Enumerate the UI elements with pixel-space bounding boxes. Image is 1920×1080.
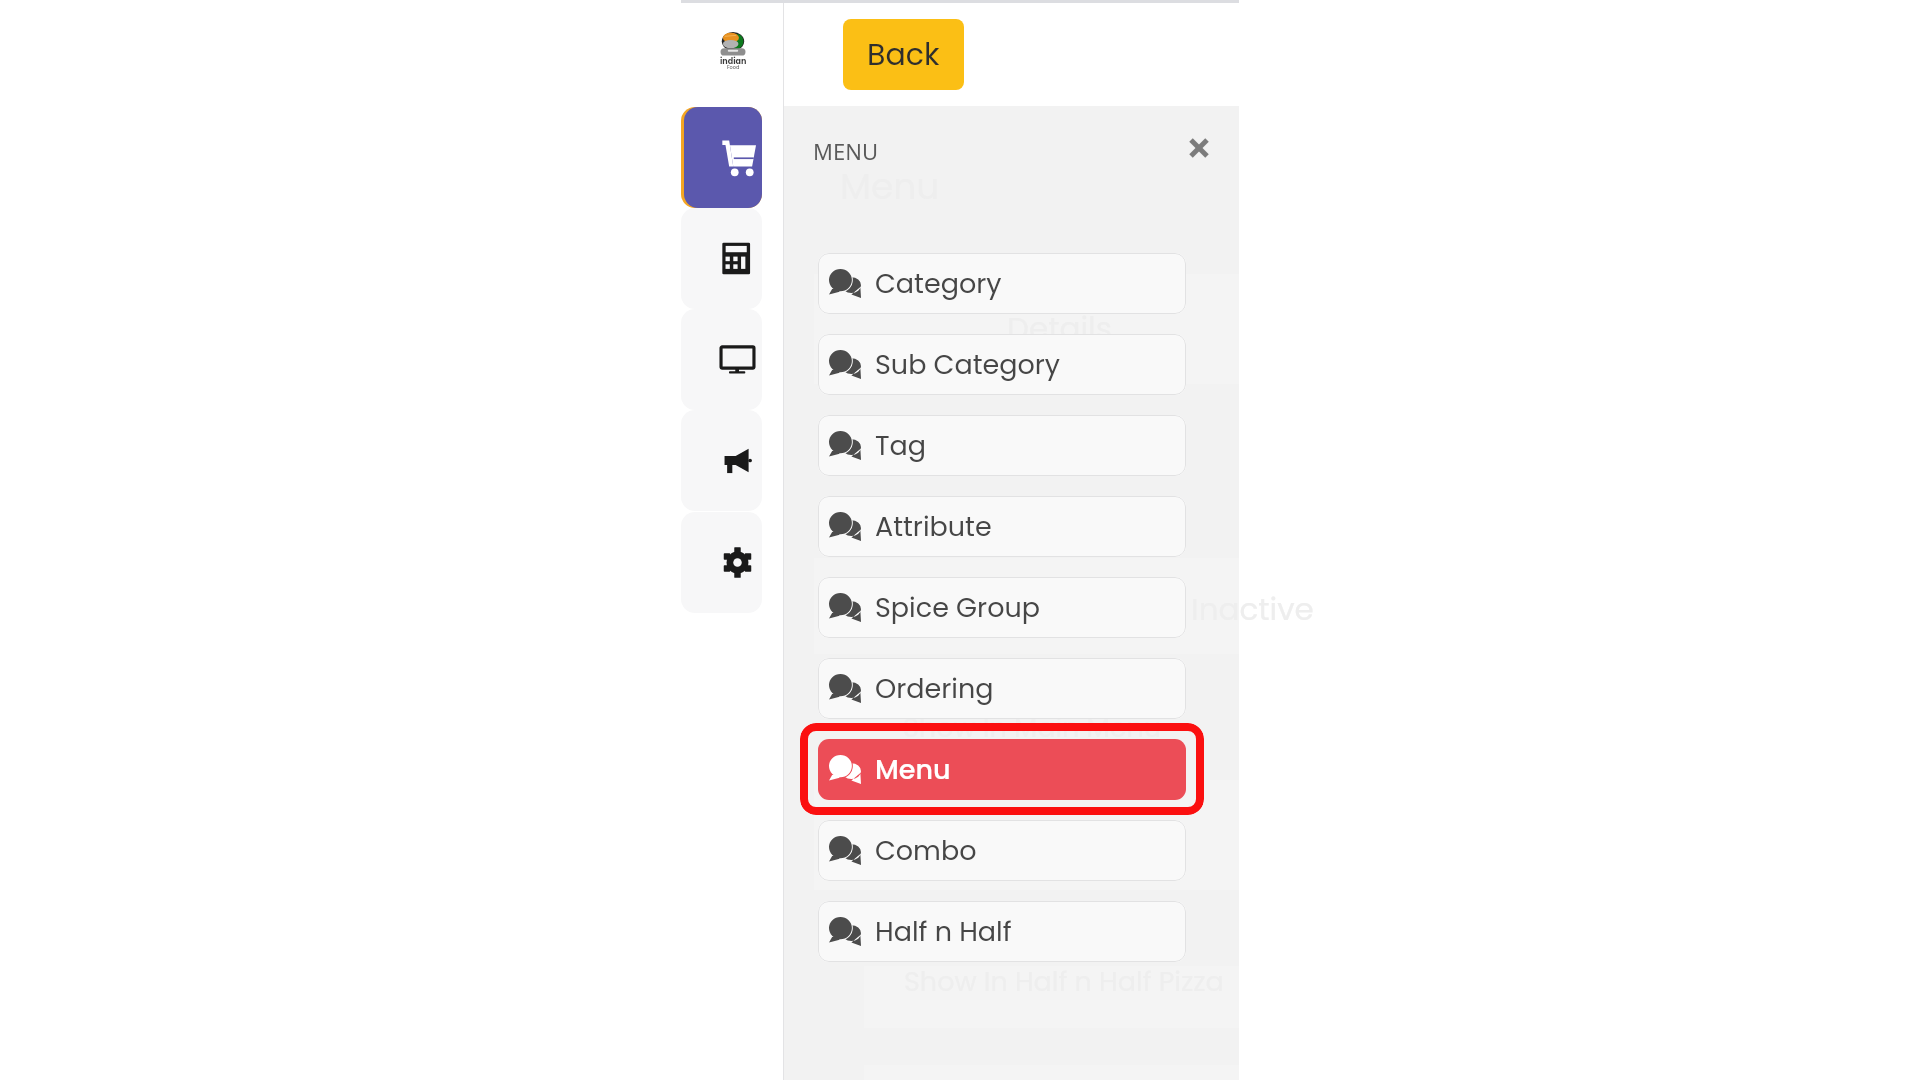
staticText: Sub Category <box>875 346 1061 384</box>
button[interactable]: Promotions <box>681 410 762 511</box>
staticText: Category <box>875 265 1002 303</box>
button[interactable]: Display <box>681 309 762 410</box>
button[interactable]: Sub Category <box>818 334 1186 395</box>
staticText: indian <box>720 56 747 67</box>
staticText: Spice Group <box>875 589 1040 627</box>
button[interactable]: Billing <box>681 208 762 309</box>
staticText: MENU <box>813 136 878 166</box>
button[interactable]: Spice Group <box>818 577 1186 638</box>
button[interactable]: Settings <box>681 512 762 613</box>
button[interactable]: Half n Half <box>818 901 1186 962</box>
staticText: Inactive <box>1191 587 1314 630</box>
button[interactable]: Orders <box>681 107 762 208</box>
button[interactable]: Category <box>818 253 1186 314</box>
staticText: Combo <box>875 832 977 870</box>
staticText: Tag <box>875 427 927 465</box>
staticText: Half n Half <box>875 913 1012 951</box>
staticText: Attribute <box>875 508 992 546</box>
button[interactable]: Close <box>1179 128 1219 168</box>
button[interactable]: Tag <box>818 415 1186 476</box>
button[interactable]: Back <box>843 19 964 90</box>
staticText: Show In Main Menu <box>903 709 1162 747</box>
staticText: Back <box>867 34 940 76</box>
button[interactable]: Ordering <box>818 658 1186 719</box>
staticText: Food <box>727 64 740 71</box>
button[interactable]: Combo <box>818 820 1186 881</box>
staticText: Details <box>1007 306 1112 349</box>
button[interactable]: Menu <box>818 739 1186 800</box>
button[interactable]: Attribute <box>818 496 1186 557</box>
staticText: Ordering <box>875 670 994 708</box>
staticText: Menu <box>875 751 951 789</box>
